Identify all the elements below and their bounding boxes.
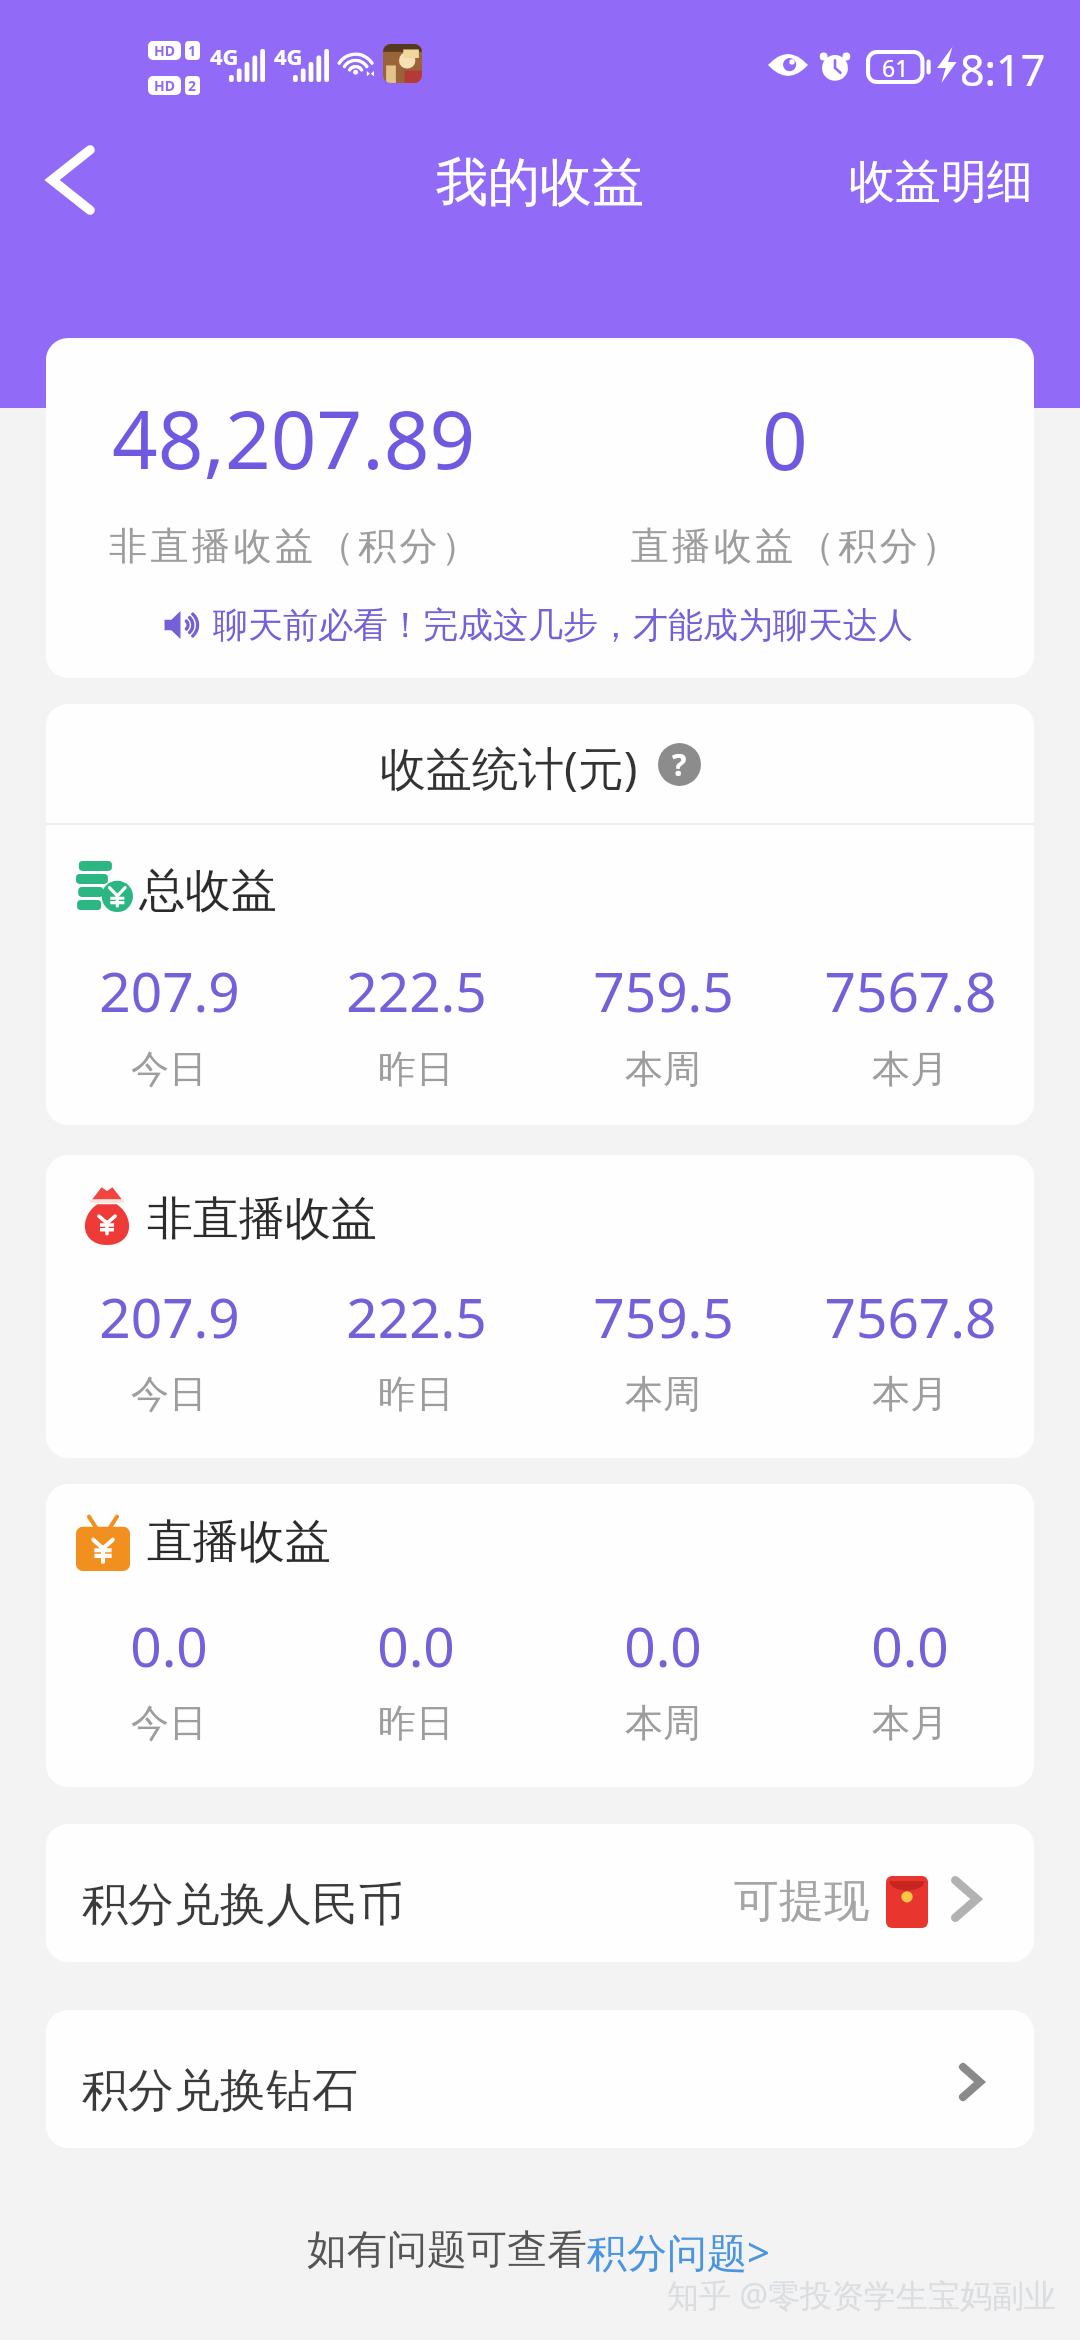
staticText: 0 <box>762 384 808 493</box>
staticText: 直播收益（积分） <box>629 522 961 570</box>
staticText: 直播收益 <box>147 1513 331 1571</box>
button[interactable]: Back <box>26 135 116 225</box>
staticText: 0.0 <box>871 1608 949 1683</box>
staticText: 2 <box>188 76 197 95</box>
staticText: 我的收益 <box>436 150 644 216</box>
staticText: ? <box>672 744 687 785</box>
staticText: 非直播收益（积分） <box>109 522 483 570</box>
staticText: 收益统计(元) <box>380 736 638 799</box>
staticText: 207.9 <box>99 1279 240 1354</box>
staticText: 可提现 <box>734 1873 869 1930</box>
staticText: 本周 <box>625 1045 701 1093</box>
staticText: 积分问题> <box>587 2224 770 2279</box>
staticText: 8:17 <box>960 40 1046 92</box>
staticText: 7567.8 <box>824 1279 997 1354</box>
button[interactable]: 聊天前必看！完成这几步，才能成为聊天达人 <box>46 594 1034 656</box>
button[interactable]: 如有问题可查看 <box>307 2224 770 2279</box>
staticText: 0.0 <box>130 1608 208 1683</box>
staticText: 收益明细 <box>849 153 1033 211</box>
staticText: 今日 <box>131 1699 207 1747</box>
staticText: 本月 <box>872 1370 948 1418</box>
button[interactable]: 收益明细 <box>811 153 1071 211</box>
staticText: 积分兑换人民币 <box>82 1876 404 1934</box>
staticText: 昨日 <box>378 1370 454 1418</box>
staticText: 222.5 <box>346 953 487 1028</box>
staticText: 759.5 <box>593 953 734 1028</box>
staticText: 1 <box>188 41 197 60</box>
staticText: 本周 <box>625 1699 701 1747</box>
staticText: 本周 <box>625 1370 701 1418</box>
staticText: 如有问题可查看 <box>307 2224 587 2274</box>
button[interactable]: 积分兑换人民币 <box>46 1824 1034 1962</box>
staticText: 207.9 <box>99 953 240 1028</box>
staticText: 总收益 <box>139 862 277 920</box>
staticText: 4G <box>274 41 303 71</box>
staticText: 759.5 <box>593 1279 734 1354</box>
staticText: 知乎 @零投资学生宝妈副业 <box>667 2273 1057 2317</box>
staticText: 非直播收益 <box>147 1190 377 1248</box>
staticText: 48,207.89 <box>112 383 476 492</box>
button[interactable]: Help <box>658 743 701 786</box>
staticText: 今日 <box>131 1370 207 1418</box>
staticText: 昨日 <box>378 1045 454 1093</box>
staticText: 61 <box>882 52 909 83</box>
staticText: 4G <box>210 41 239 71</box>
staticText: 积分兑换钻石 <box>82 2062 358 2120</box>
staticText: 本月 <box>872 1045 948 1093</box>
staticText: 0.0 <box>377 1608 455 1683</box>
staticText: HD <box>154 41 175 60</box>
staticText: 今日 <box>131 1045 207 1093</box>
staticText: 聊天前必看！完成这几步，才能成为聊天达人 <box>213 603 913 647</box>
staticText: 昨日 <box>378 1699 454 1747</box>
button[interactable]: 积分兑换钻石 <box>46 2010 1034 2148</box>
staticText: HD <box>154 76 175 95</box>
staticText: 0.0 <box>624 1608 702 1683</box>
staticText: 7567.8 <box>824 953 997 1028</box>
staticText: 本月 <box>872 1699 948 1747</box>
staticText: 222.5 <box>346 1279 487 1354</box>
